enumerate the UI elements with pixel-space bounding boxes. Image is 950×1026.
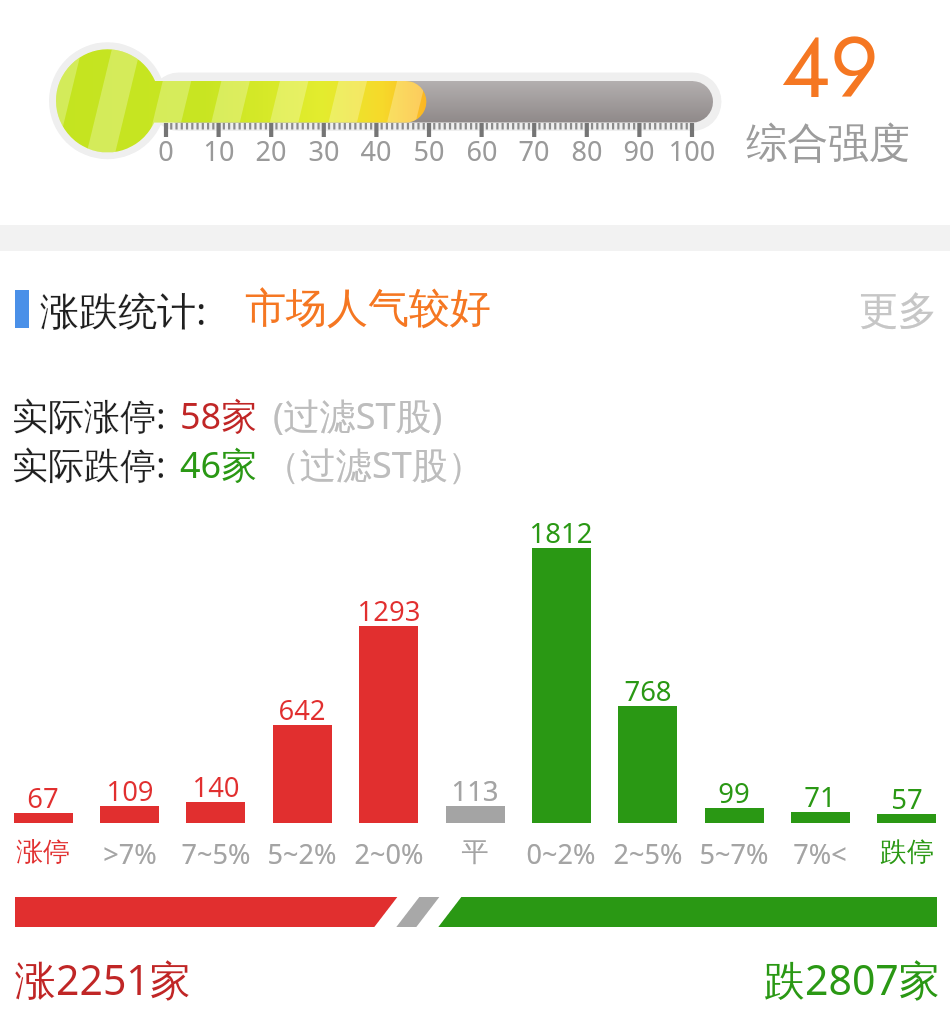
staticText: 70 (494, 132, 574, 169)
staticText: 71 (760, 778, 880, 815)
staticText: 5~7% (674, 835, 794, 872)
staticText: （过滤ST股） (264, 440, 484, 489)
staticText: 1812 (501, 514, 621, 551)
staticText: 100 (652, 132, 732, 169)
staticText: 49 (730, 7, 930, 128)
staticText: 7%< (760, 835, 880, 872)
staticText: 1293 (329, 592, 449, 629)
staticText: 更多 (859, 286, 937, 332)
staticText: 0~2% (501, 835, 621, 872)
staticText: 768 (588, 672, 708, 709)
staticText: 平 (415, 835, 535, 869)
staticText: 80 (547, 132, 627, 169)
staticText: 40 (336, 132, 416, 169)
staticText: 跌停 (847, 835, 950, 869)
staticText: 50 (389, 132, 469, 169)
staticText: 99 (674, 774, 794, 811)
staticText: 140 (156, 768, 276, 805)
staticText: 109 (70, 772, 190, 809)
staticText: 跌2807家 (764, 951, 940, 1007)
staticText: 46家 (180, 440, 258, 489)
staticText: 涨停 (0, 835, 103, 869)
staticText: 60 (442, 132, 522, 169)
staticText: 实际涨停: (12, 391, 166, 440)
button[interactable]: 更多 (855, 282, 941, 336)
staticText: 10 (179, 132, 259, 169)
staticText: >7% (70, 835, 190, 872)
staticText: 2~5% (588, 835, 708, 872)
staticText: 实际跌停: (12, 440, 166, 489)
staticText: 综合强度 (728, 118, 928, 170)
staticText: 113 (415, 772, 535, 809)
staticText: 57 (847, 780, 950, 817)
staticText: 90 (599, 132, 679, 169)
staticText: (过滤ST股) (273, 391, 443, 440)
staticText: 涨2251家 (15, 951, 191, 1007)
staticText: 67 (0, 779, 103, 816)
staticText: 0 (126, 132, 206, 169)
staticText: 2~0% (329, 835, 449, 872)
staticText: 涨跌统计: (40, 283, 207, 336)
staticText: 20 (231, 132, 311, 169)
staticText: 30 (284, 132, 364, 169)
staticText: 市场人气较好 (245, 283, 491, 335)
staticText: 58家 (180, 391, 258, 440)
staticText: 7~5% (156, 835, 276, 872)
staticText: 5~2% (242, 835, 362, 872)
staticText: 642 (242, 691, 362, 728)
